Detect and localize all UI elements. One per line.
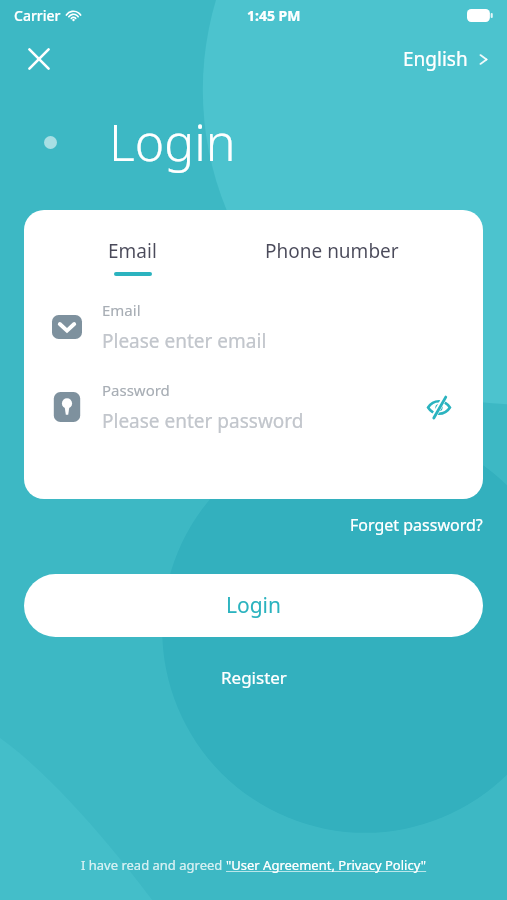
staticText: Register (221, 666, 287, 689)
button[interactable]: English (399, 40, 493, 78)
staticText: 1:45 PM (247, 6, 301, 25)
button[interactable]: Phone number (255, 236, 409, 266)
staticText: Phone number (265, 238, 399, 264)
button[interactable]: Close (16, 36, 62, 82)
button[interactable]: Login (24, 574, 483, 637)
staticText: Forget password? (350, 514, 483, 536)
staticText: Login (109, 108, 236, 176)
button[interactable]: "User Agreement, Privacy Policy" (226, 856, 427, 874)
staticText: Please enter password (102, 408, 304, 434)
button[interactable]: Email (98, 236, 167, 278)
staticText: Carrier (14, 6, 61, 25)
staticText: Email (108, 238, 157, 264)
staticText: I have read and agreed (81, 856, 226, 874)
staticText: English (403, 46, 468, 72)
staticText: Password (102, 380, 170, 400)
staticText: Email (102, 300, 141, 320)
button[interactable]: Register (207, 660, 301, 695)
staticText: Login (226, 591, 282, 620)
staticText: "User Agreement, Privacy Policy" (226, 856, 427, 874)
button[interactable]: Toggle password visibility (421, 389, 457, 425)
button[interactable]: Forget password? (346, 510, 487, 540)
staticText: Please enter email (102, 328, 267, 354)
